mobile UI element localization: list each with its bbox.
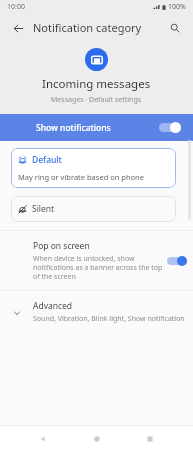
staticText: May ring or vibrate based on phone setti… (18, 172, 169, 182)
staticText: Incoming messages (42, 76, 151, 92)
button[interactable]: Back (6, 16, 30, 40)
staticText: When device is unlocked, show notificati… (33, 254, 163, 281)
staticText: Messages · Default settings (51, 95, 142, 105)
button[interactable]: Advanced (0, 291, 193, 333)
staticText: Notification category (33, 20, 142, 35)
button[interactable]: Recent apps (139, 428, 161, 450)
button[interactable]: Default (11, 148, 176, 188)
button[interactable]: Search (163, 16, 187, 40)
button[interactable]: Home (86, 428, 108, 450)
staticText: Sound, Vibration, Blink light, Show noti… (33, 314, 185, 324)
button[interactable]: Show notifications (0, 114, 193, 141)
button[interactable]: Silent (11, 196, 176, 222)
staticText: Silent (32, 203, 55, 215)
staticText: 10:00 (7, 2, 25, 12)
button[interactable]: Back (32, 428, 54, 450)
staticText: Pop on screen (33, 240, 90, 252)
staticText: Advanced (33, 300, 73, 312)
staticText: Show notifications (36, 122, 111, 134)
button[interactable]: Pop on screen (0, 231, 193, 290)
staticText: Default (32, 154, 62, 166)
staticText: 100% (168, 2, 186, 12)
